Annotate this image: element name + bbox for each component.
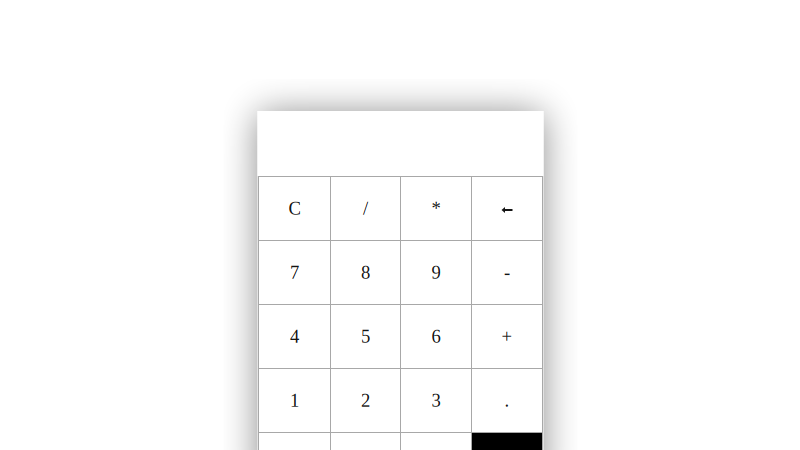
staticText: 8	[361, 262, 370, 283]
button[interactable]: /	[331, 177, 400, 240]
staticText: 3	[431, 390, 440, 411]
button[interactable]: 4	[259, 305, 330, 368]
staticText: 7	[290, 262, 299, 283]
button[interactable]: 6	[401, 305, 471, 368]
staticText: 2	[361, 390, 370, 411]
button[interactable]: 3	[401, 369, 471, 432]
button[interactable]: -	[472, 241, 542, 304]
button[interactable]: 5	[331, 305, 400, 368]
button[interactable]: 8	[331, 241, 400, 304]
staticText: +	[501, 326, 512, 347]
staticText: C	[288, 198, 300, 219]
button[interactable]: Backspace	[472, 177, 542, 240]
staticText: 9	[431, 262, 440, 283]
staticText: *	[431, 198, 440, 219]
button[interactable]: *	[401, 177, 471, 240]
staticText: 5	[361, 326, 370, 347]
button[interactable]: 7	[259, 241, 330, 304]
button[interactable]: 1	[259, 369, 330, 432]
staticText: 4	[290, 326, 299, 347]
button[interactable]: 2	[331, 369, 400, 432]
button[interactable]: +	[472, 305, 542, 368]
staticText: 1	[290, 390, 299, 411]
staticText: /	[363, 198, 368, 219]
button[interactable]: 9	[401, 241, 471, 304]
staticText: 6	[431, 326, 440, 347]
button[interactable]: .	[472, 369, 542, 432]
button[interactable]: C	[259, 177, 330, 240]
staticText: .	[504, 390, 509, 411]
staticText: -	[504, 262, 510, 283]
